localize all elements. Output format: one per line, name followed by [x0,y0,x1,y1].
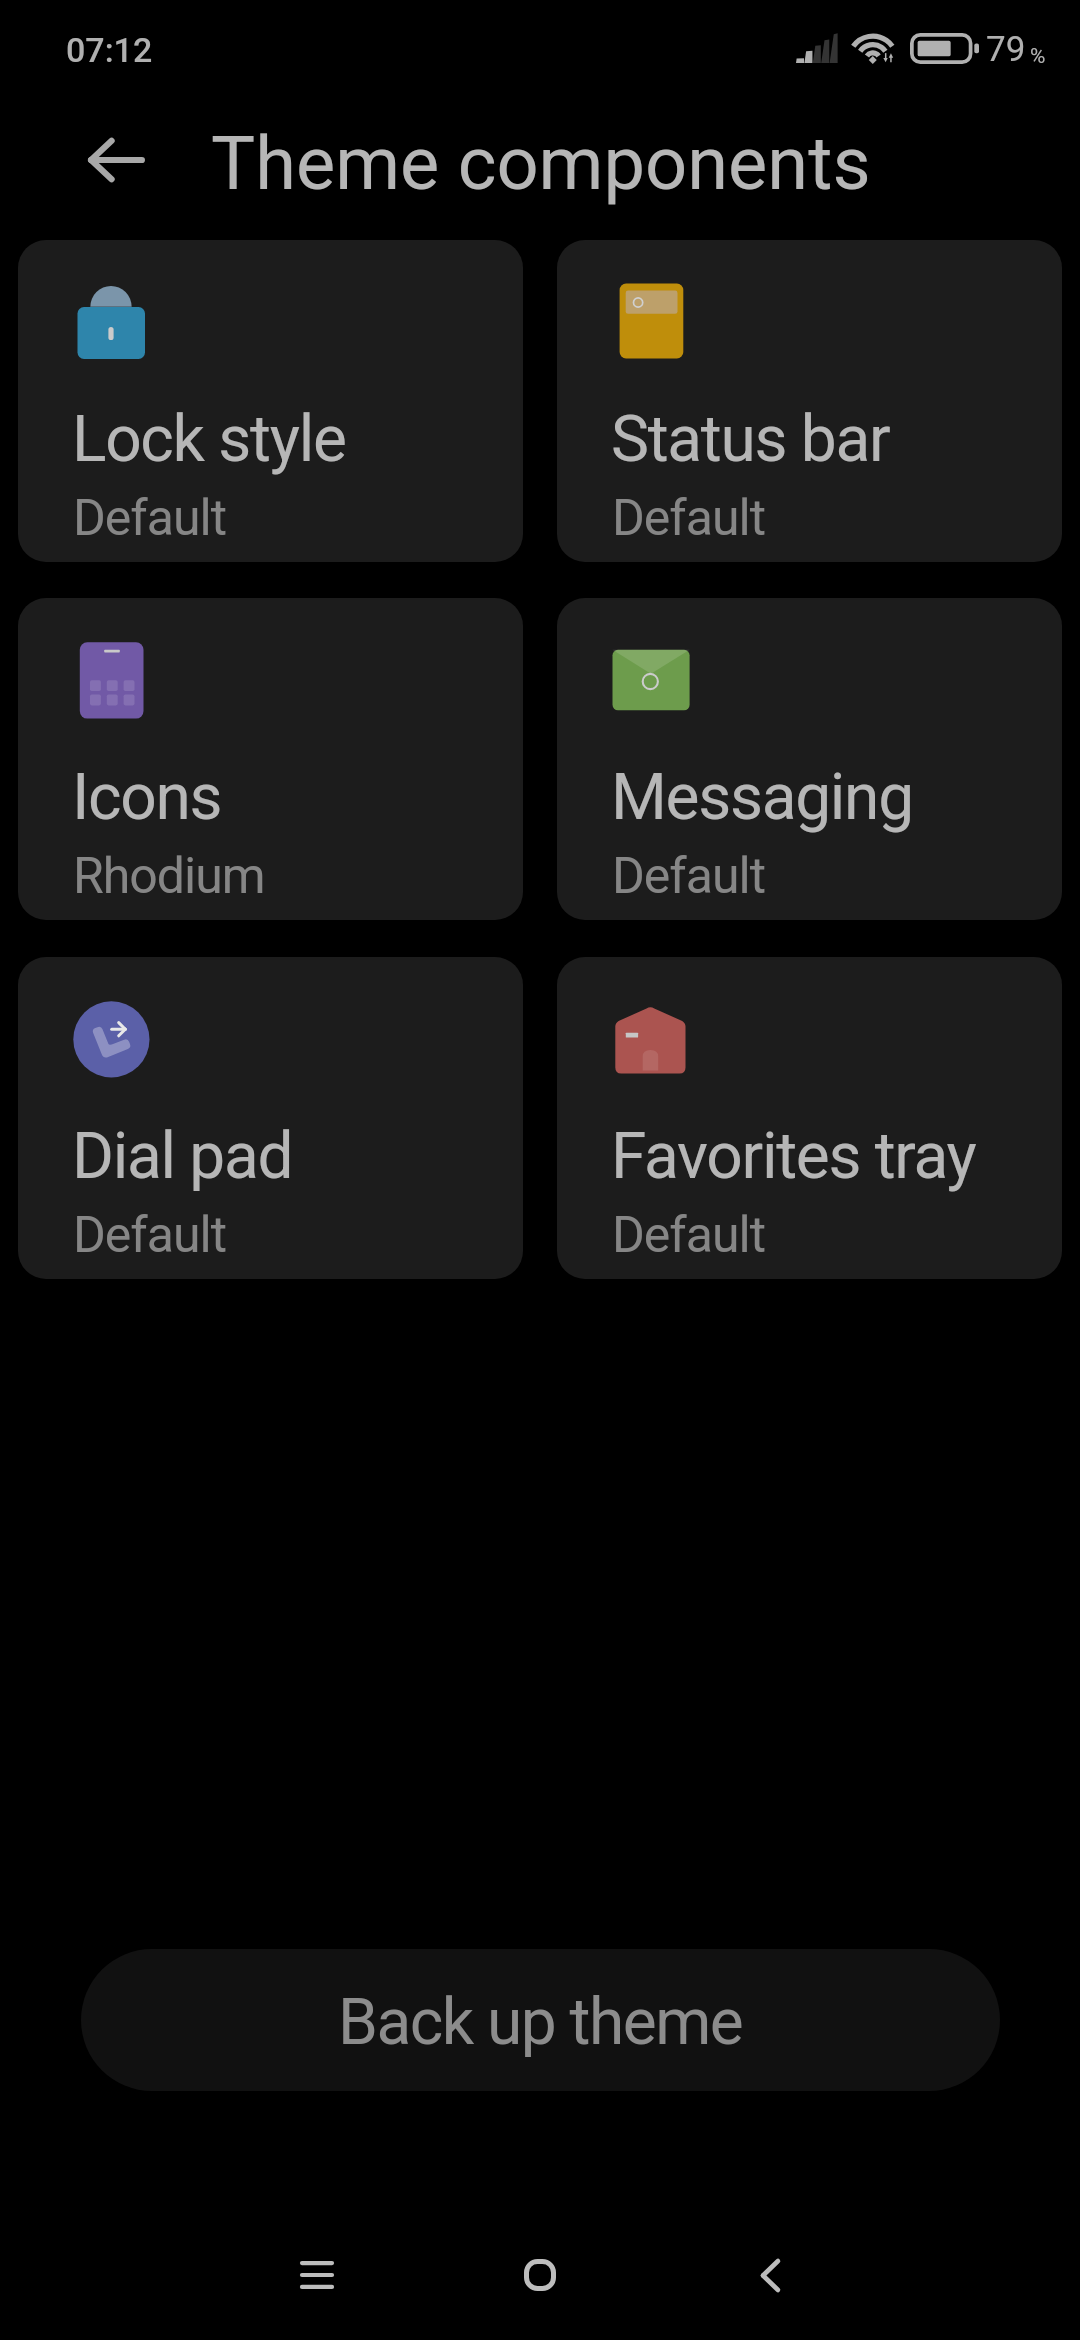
staticText: 07:12 [66,30,153,70]
staticText: Theme components [211,120,871,207]
button[interactable]: Favorites tray [557,957,1062,1279]
staticText: Rhodium [73,847,265,906]
staticText: Default [612,847,765,906]
staticText: Default [612,489,765,548]
staticText: Icons [72,760,222,835]
button[interactable]: Status bar [557,240,1062,562]
button[interactable]: Icons [18,598,523,920]
staticText: Status bar [611,402,890,477]
staticText: Default [73,489,226,548]
staticText: Default [73,1206,226,1265]
button[interactable]: Back [56,100,176,220]
button[interactable]: Recents [257,2215,377,2335]
button[interactable]: Back [710,2215,830,2335]
staticText: % [1030,44,1046,69]
staticText: Favorites tray [611,1119,976,1194]
staticText: 79 [986,29,1026,70]
staticText: Lock style [72,402,346,477]
button[interactable]: Lock style [18,240,523,562]
button[interactable]: Back up theme [81,1949,1000,2091]
staticText: Messaging [611,760,913,835]
button[interactable]: Messaging [557,598,1062,920]
staticText: Dial pad [72,1119,293,1194]
staticText: Back up theme [338,1985,743,2060]
button[interactable]: Dial pad [18,957,523,1279]
staticText: Default [612,1206,765,1265]
button[interactable]: Home [480,2215,600,2335]
